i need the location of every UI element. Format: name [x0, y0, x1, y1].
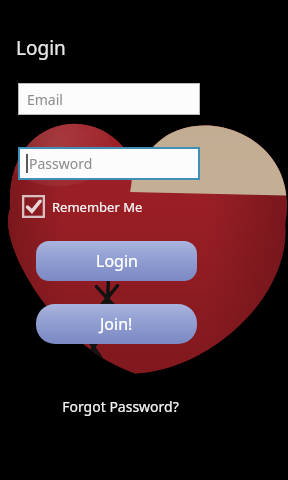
staticText: Login — [16, 35, 66, 61]
staticText: Remember Me — [52, 198, 143, 216]
staticText: Login — [96, 250, 138, 272]
button[interactable]: Join! — [36, 304, 197, 344]
button[interactable]: Password — [18, 147, 200, 180]
staticText: Join! — [100, 313, 133, 335]
staticText: Forgot Password? — [62, 397, 179, 416]
other: Remember Me checkbox, checked — [22, 195, 45, 218]
staticText: Email — [27, 90, 63, 109]
staticText: Password — [29, 154, 93, 173]
button[interactable]: Login — [36, 241, 197, 281]
button[interactable]: Email — [18, 83, 200, 115]
button[interactable]: Remember Me checkbox, checked — [20, 193, 162, 220]
button[interactable]: Forgot Password? — [44, 393, 196, 419]
